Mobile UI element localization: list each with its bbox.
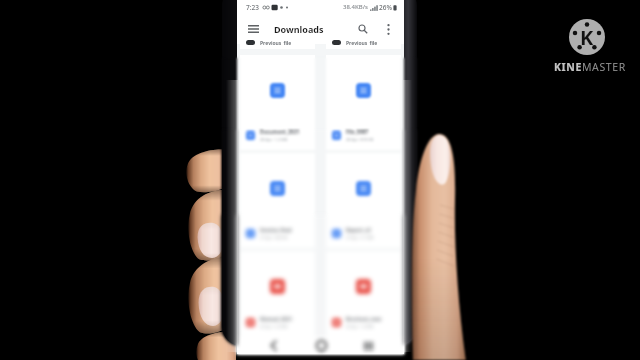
button[interactable]: Brochure_new bbox=[326, 251, 401, 337]
button[interactable]: Invoice_final bbox=[240, 153, 315, 248]
button[interactable]: Previous_file bbox=[240, 44, 315, 49]
staticText: Invoice_final bbox=[260, 227, 292, 234]
button[interactable]: File_0987 bbox=[326, 55, 401, 150]
button[interactable]: Home bbox=[310, 337, 332, 354]
button[interactable]: Manual_2021 bbox=[240, 251, 315, 337]
button[interactable]: Brochure_new bbox=[326, 251, 401, 337]
button[interactable]: Report_v3 bbox=[326, 153, 401, 248]
button[interactable]: Search bbox=[353, 19, 373, 39]
button[interactable]: More options bbox=[378, 19, 398, 39]
button[interactable]: Search bbox=[353, 19, 373, 39]
button[interactable]: Previous_file bbox=[240, 44, 315, 49]
staticText: 26% bbox=[379, 3, 392, 12]
staticText: Document_2021 bbox=[260, 129, 300, 136]
button[interactable]: Document_2021 bbox=[240, 55, 315, 150]
button[interactable]: Back bbox=[262, 337, 284, 354]
button[interactable]: More options bbox=[378, 19, 398, 39]
staticText: Brochure_new bbox=[346, 316, 382, 323]
staticText: 38.4KB/s bbox=[343, 3, 368, 11]
button[interactable]: Home bbox=[310, 337, 332, 354]
button[interactable]: Recent apps bbox=[357, 337, 379, 354]
button[interactable]: Invoice_final bbox=[240, 153, 315, 248]
staticText: Manual_2021 bbox=[260, 316, 293, 323]
staticText: Report_v3 bbox=[346, 227, 371, 234]
button[interactable]: Back bbox=[262, 337, 284, 354]
staticText: File_0987 bbox=[346, 129, 369, 136]
button[interactable]: Report_v3 bbox=[326, 153, 401, 248]
button[interactable]: Report_v3 bbox=[326, 153, 401, 248]
button[interactable]: Invoice_final bbox=[240, 153, 315, 248]
button[interactable]: Search bbox=[353, 19, 373, 39]
button[interactable]: Previous_file bbox=[326, 44, 401, 49]
staticText: Brochure_new bbox=[346, 316, 382, 323]
staticText: MASTER bbox=[582, 60, 626, 74]
button[interactable]: Back bbox=[262, 337, 284, 354]
staticText: 7:23 bbox=[246, 3, 259, 12]
button[interactable]: Navigation menu bbox=[243, 19, 263, 39]
button[interactable]: File_0987 bbox=[326, 55, 401, 150]
staticText: Previous_file bbox=[346, 40, 378, 45]
button[interactable]: Manual_2021 bbox=[240, 251, 315, 337]
button[interactable]: Recent apps bbox=[357, 337, 379, 354]
staticText: 7:23 bbox=[246, 3, 259, 12]
button[interactable]: Search bbox=[353, 19, 373, 39]
staticText: 28 Apr 870 KB bbox=[346, 137, 374, 142]
staticText: Previous_file bbox=[260, 40, 292, 45]
staticText: Invoice_final bbox=[260, 227, 292, 234]
button[interactable]: Document_2021 bbox=[240, 55, 315, 150]
button[interactable]: Home bbox=[310, 337, 332, 354]
button[interactable]: More options bbox=[378, 19, 398, 39]
staticText: Previous_file bbox=[346, 40, 378, 45]
staticText: Report_v3 bbox=[346, 227, 371, 234]
staticText: Previous_file bbox=[346, 40, 378, 45]
staticText: KINE bbox=[554, 60, 582, 74]
staticText: Previous_file bbox=[346, 40, 378, 45]
staticText: Previous_file bbox=[260, 40, 292, 45]
button[interactable]: Navigation menu bbox=[243, 19, 263, 39]
staticText: Document_2021 bbox=[260, 129, 300, 136]
button[interactable]: File_0987 bbox=[326, 55, 401, 150]
button[interactable]: Home bbox=[310, 337, 332, 354]
button[interactable]: Document_2021 bbox=[240, 55, 315, 150]
staticText: File_0987 bbox=[346, 129, 369, 136]
staticText: 28 Apr 870 KB bbox=[346, 137, 374, 142]
button[interactable]: Manual_2021 bbox=[240, 251, 315, 337]
button[interactable]: Navigation menu bbox=[243, 19, 263, 39]
button[interactable]: Navigation menu bbox=[243, 19, 263, 39]
staticText: Downloads bbox=[274, 23, 324, 35]
button[interactable]: More options bbox=[378, 19, 398, 39]
staticText: Downloads bbox=[274, 23, 324, 35]
staticText: Manual_2021 bbox=[260, 316, 293, 323]
button[interactable]: Brochure_new bbox=[326, 251, 401, 337]
staticText: Manual_2021 bbox=[260, 316, 293, 323]
staticText: Report_v3 bbox=[346, 227, 371, 234]
button[interactable]: Previous_file bbox=[240, 44, 315, 49]
staticText: 28 Apr 1.2 MB bbox=[260, 137, 288, 142]
button[interactable]: Invoice_final bbox=[240, 153, 315, 248]
staticText: K bbox=[580, 24, 594, 51]
button[interactable]: Previous_file bbox=[326, 44, 401, 49]
button[interactable]: Back bbox=[262, 337, 284, 354]
staticText: Document_2021 bbox=[260, 129, 300, 136]
button[interactable]: Brochure_new bbox=[326, 251, 401, 337]
button[interactable]: Previous_file bbox=[240, 44, 315, 49]
button[interactable]: Previous_file bbox=[326, 44, 401, 49]
button[interactable]: Previous_file bbox=[326, 44, 401, 49]
button[interactable]: Document_2021 bbox=[240, 55, 315, 150]
button[interactable]: Report_v3 bbox=[326, 153, 401, 248]
staticText: Brochure_new bbox=[346, 316, 382, 323]
button[interactable]: Recent apps bbox=[357, 337, 379, 354]
button[interactable]: Recent apps bbox=[357, 337, 379, 354]
button[interactable]: File_0987 bbox=[326, 55, 401, 150]
button[interactable]: Manual_2021 bbox=[240, 251, 315, 337]
